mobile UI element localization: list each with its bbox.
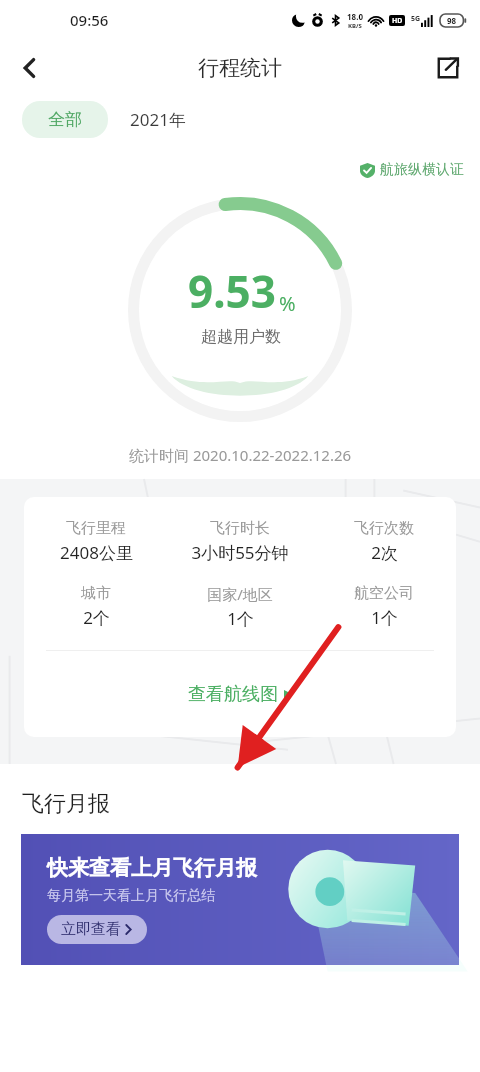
staticText: 快来查看上月飞行月报 bbox=[47, 855, 257, 881]
staticText: 18.0 bbox=[347, 11, 363, 22]
staticText: 1个 bbox=[227, 607, 254, 630]
staticText: 飞行时长 bbox=[210, 519, 270, 538]
staticText: HD bbox=[392, 16, 403, 26]
staticText: 98 bbox=[447, 15, 457, 26]
staticText: 全部 bbox=[48, 109, 82, 130]
staticText: 2021年 bbox=[130, 108, 186, 131]
staticText: 09:56 bbox=[70, 10, 109, 30]
staticText: 飞行次数 bbox=[354, 519, 414, 538]
staticText: 超越用户数 bbox=[201, 327, 281, 347]
staticText: 5G bbox=[411, 14, 421, 24]
button[interactable]: 查看航线图 bbox=[24, 651, 456, 737]
staticText: 航旅纵横认证 bbox=[380, 161, 464, 179]
staticText: 1个 bbox=[371, 606, 398, 629]
button[interactable]: 立即查看 bbox=[47, 915, 147, 944]
staticText: 每月第一天看上月飞行总结 bbox=[47, 887, 215, 905]
button[interactable]: Share bbox=[424, 44, 472, 92]
staticText: 2次 bbox=[371, 541, 398, 564]
staticText: 2408公里 bbox=[60, 541, 133, 564]
staticText: % bbox=[279, 290, 296, 317]
staticText: 查看航线图 bbox=[188, 683, 278, 706]
staticText: 飞行里程 bbox=[66, 519, 126, 538]
button[interactable]: 全部 bbox=[22, 101, 108, 138]
staticText: 统计时间 2020.10.22-2022.12.26 bbox=[129, 445, 352, 465]
staticText: 9.53 bbox=[188, 261, 276, 321]
staticText: 航空公司 bbox=[354, 584, 414, 603]
staticText: 立即查看 bbox=[61, 920, 121, 939]
staticText: 国家/地区 bbox=[207, 584, 273, 604]
staticText: KB/S bbox=[348, 22, 362, 30]
button[interactable]: 2021年 bbox=[108, 100, 208, 139]
staticText: 飞行月报 bbox=[22, 790, 110, 818]
staticText: 3小时55分钟 bbox=[191, 541, 289, 564]
button[interactable]: 快来查看上月飞行月报 bbox=[21, 834, 459, 965]
staticText: 2个 bbox=[83, 606, 110, 629]
staticText: 行程统计 bbox=[198, 55, 282, 81]
staticText: 城市 bbox=[81, 584, 111, 603]
button[interactable]: Back bbox=[6, 44, 54, 92]
